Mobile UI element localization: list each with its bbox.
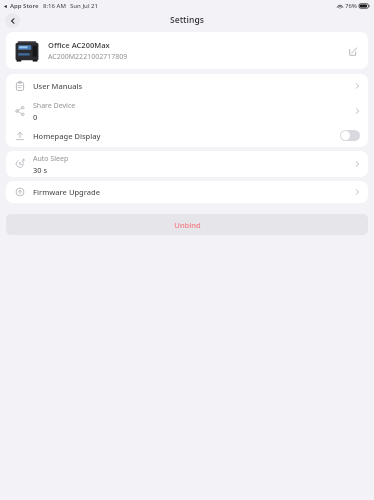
button[interactable]: Back	[5, 13, 20, 28]
button[interactable]: User Manuals	[6, 74, 368, 98]
button[interactable]: Office AC200Max	[6, 32, 368, 69]
staticText: Office AC200Max	[48, 40, 110, 50]
button[interactable]: Homepage Display toggle	[340, 130, 360, 141]
staticText: Share Device	[33, 101, 76, 111]
staticText: Homepage Display	[33, 131, 101, 141]
staticText: 30 s	[33, 165, 48, 175]
staticText: 8:16 AM	[43, 2, 66, 10]
staticText: App Store	[10, 2, 39, 10]
staticText: Settings	[170, 14, 204, 26]
button[interactable]: Share Device	[6, 98, 368, 124]
button[interactable]: Auto Sleep	[6, 151, 368, 177]
staticText: Firmware Upgrade	[33, 187, 100, 197]
staticText: AC200M2221002717809	[48, 52, 128, 62]
staticText: 0	[33, 112, 38, 122]
staticText: Auto Sleep	[33, 154, 69, 164]
button[interactable]: Firmware Upgrade	[6, 181, 368, 203]
button[interactable]: Homepage Display	[6, 124, 368, 147]
staticText: 76%	[345, 2, 357, 10]
staticText: Sun Jul 21	[70, 2, 98, 10]
button[interactable]: Unbind	[6, 214, 368, 235]
staticText: Unbind	[174, 220, 201, 230]
staticText: User Manuals	[33, 81, 83, 91]
button[interactable]: Edit name	[346, 44, 360, 58]
